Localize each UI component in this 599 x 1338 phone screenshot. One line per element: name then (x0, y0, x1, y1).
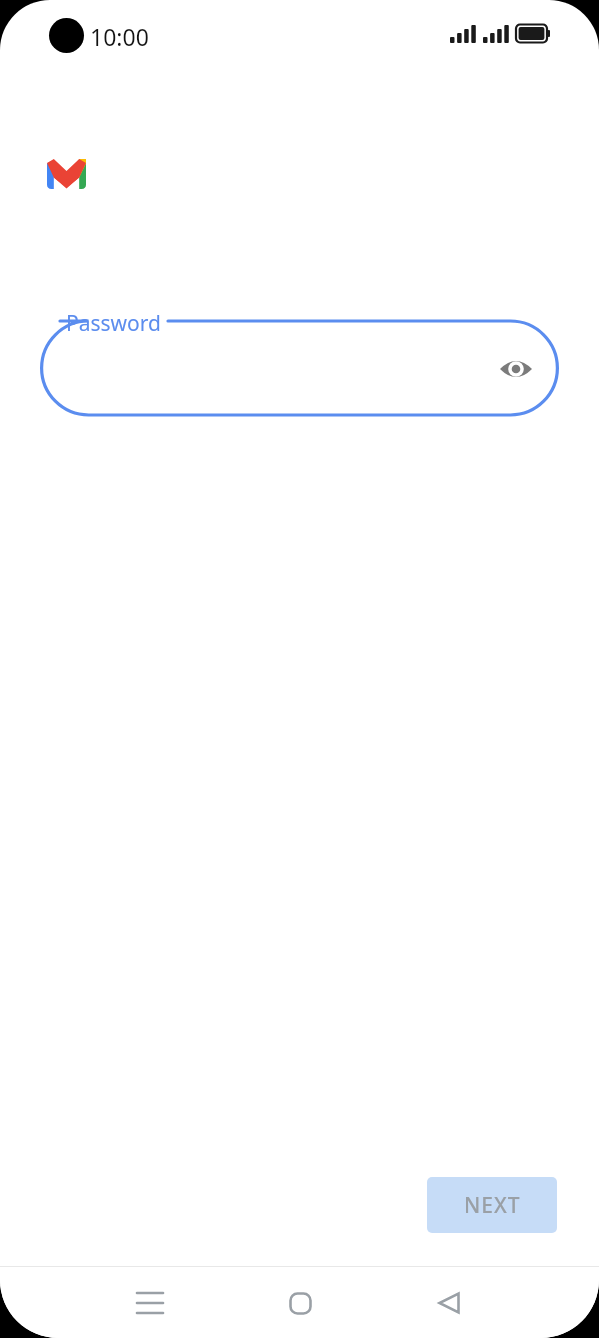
button[interactable]: Home (276, 1279, 324, 1327)
button[interactable]: Show password (496, 349, 536, 389)
button[interactable]: Recent apps (126, 1279, 174, 1327)
staticText: 10:00 (90, 21, 149, 52)
staticText: NEXT (464, 1191, 521, 1220)
button[interactable]: Back (425, 1279, 473, 1327)
button[interactable]: Password (40, 311, 559, 417)
button[interactable]: NEXT (427, 1177, 557, 1233)
staticText: Password (66, 309, 161, 338)
